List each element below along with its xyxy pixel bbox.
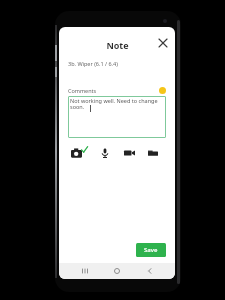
staticText: Save	[144, 246, 158, 254]
button[interactable]: Recents	[78, 264, 92, 278]
button[interactable]: Record video	[121, 145, 137, 161]
button[interactable]: Save	[136, 243, 166, 257]
button[interactable]: Close	[155, 35, 171, 51]
staticText: Note	[106, 39, 129, 51]
button[interactable]: Back	[143, 264, 157, 278]
staticText: 3b. Wiper (6.1 / 6.4)	[68, 60, 118, 67]
button[interactable]: Attach file	[145, 145, 161, 161]
button[interactable]: Home	[110, 264, 124, 278]
staticText: Comments	[68, 87, 97, 94]
button[interactable]: Not working well. Need to change soon.	[68, 96, 166, 138]
button[interactable]: Take photo	[71, 145, 89, 161]
staticText: Not working well. Need to change soon.	[70, 97, 160, 111]
button[interactable]: Record audio	[97, 145, 113, 161]
button[interactable]: Status	[159, 87, 166, 94]
